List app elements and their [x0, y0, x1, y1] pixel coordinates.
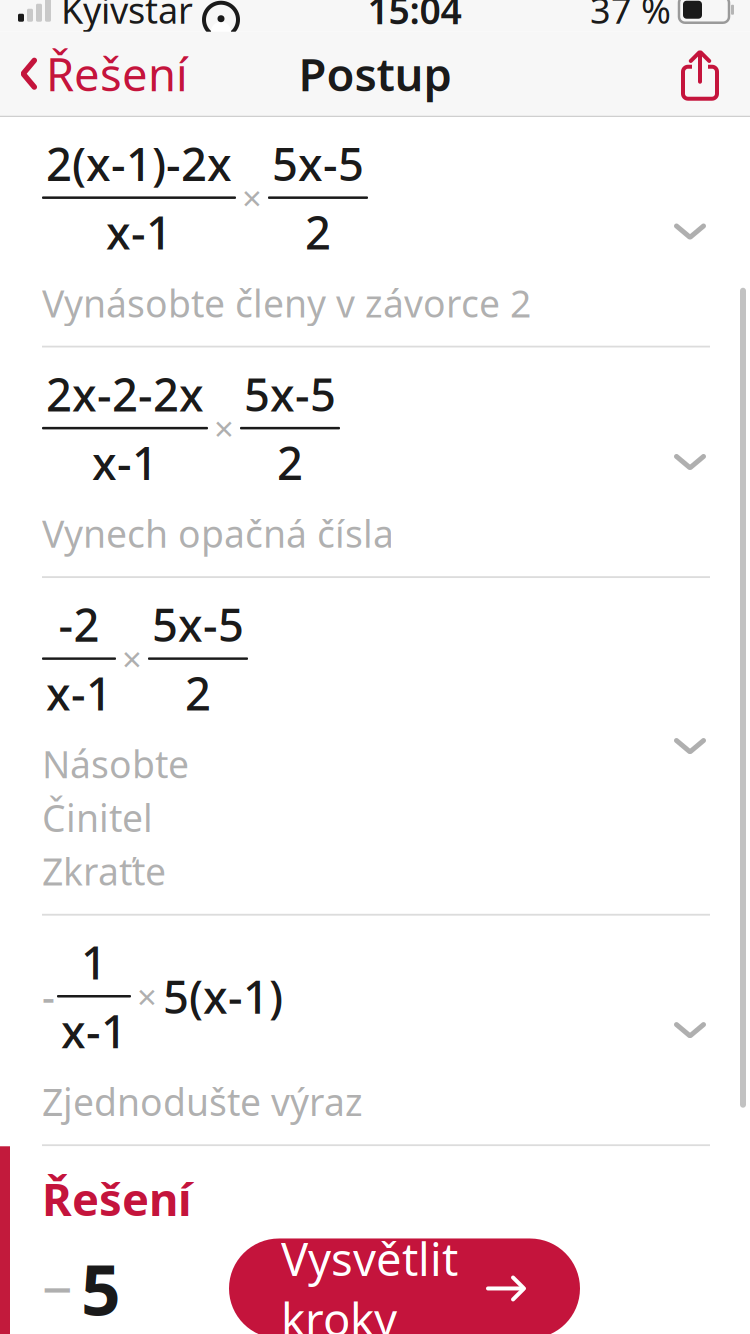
staticText: Násobte	[42, 739, 189, 789]
button[interactable]: 2(x-1)-2x	[0, 117, 750, 346]
staticText: Řešení	[46, 44, 188, 104]
staticText: 37 %	[590, 0, 671, 34]
staticText: ×	[242, 175, 262, 221]
button[interactable]: Vysvětlit kroky	[229, 1238, 580, 1334]
staticText: x-1	[61, 1000, 127, 1061]
staticText: Zjednodušte výraz	[42, 1077, 363, 1126]
staticText: 15:04	[367, 0, 461, 34]
staticText: 2(x-1)-2x	[46, 133, 232, 193]
staticText: 2x-2-2x	[46, 364, 204, 424]
staticText: 1	[81, 932, 107, 992]
button[interactable]: 2x-2-2x	[0, 348, 750, 576]
staticText: Vysvětlit kroky	[281, 1228, 458, 1334]
staticText: ×	[122, 636, 142, 682]
staticText: 2	[185, 663, 211, 723]
button[interactable]: -2	[0, 578, 750, 914]
staticText: Řešení	[42, 1168, 192, 1228]
staticText: 5x-5	[152, 594, 244, 654]
button[interactable]: Share	[672, 46, 750, 102]
staticText: 5x-5	[272, 133, 364, 193]
staticText: 2	[277, 432, 303, 493]
staticText: ×	[137, 973, 157, 1019]
staticText: -2	[58, 594, 99, 654]
staticText: Vynásobte členy v závorce 2	[42, 278, 531, 328]
staticText: Zkraťte	[42, 846, 166, 896]
staticText: 5x-5	[244, 364, 336, 424]
staticText: x-1	[46, 663, 112, 723]
staticText: 5	[81, 1242, 121, 1334]
staticText: -	[42, 970, 55, 1023]
button[interactable]: -	[0, 916, 750, 1144]
staticText: x-1	[92, 432, 158, 493]
staticText: Kyivstar	[61, 0, 193, 34]
staticText: 5(x-1)	[163, 966, 283, 1026]
staticText: Činitel	[42, 793, 153, 842]
staticText: −	[42, 1253, 73, 1324]
button[interactable]: Řešení	[0, 36, 188, 112]
staticText: Vynech opačná čísla	[42, 509, 394, 558]
staticText: x-1	[106, 202, 172, 262]
staticText: 2	[305, 202, 331, 262]
staticText: Postup	[298, 44, 451, 104]
staticText: ×	[214, 405, 234, 451]
